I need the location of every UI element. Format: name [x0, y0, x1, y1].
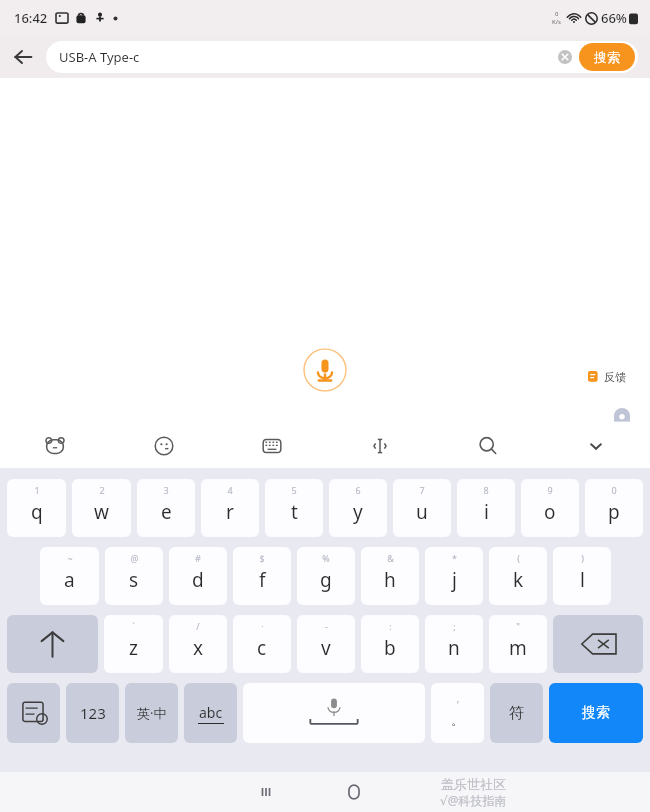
button[interactable]: 6 — [329, 479, 387, 537]
button[interactable]: 搜索 — [549, 683, 643, 743]
button[interactable]: # — [169, 547, 227, 605]
staticText: y — [353, 499, 363, 525]
button[interactable]: Recents — [242, 772, 290, 812]
button[interactable]: ’ — [431, 683, 484, 743]
button[interactable]: Home — [330, 772, 378, 812]
staticText: & — [387, 552, 394, 564]
button[interactable]: abc — [184, 683, 237, 743]
staticText: 1 — [34, 484, 40, 496]
button[interactable]: ( — [489, 547, 547, 605]
staticText: ( — [517, 552, 520, 564]
staticText: f — [259, 567, 266, 593]
button[interactable]: USB-A Type-c — [46, 41, 638, 73]
staticText: s — [129, 567, 139, 593]
staticText: ; — [453, 620, 456, 632]
button[interactable]: * — [425, 547, 483, 605]
staticText: e — [161, 499, 172, 525]
staticText: * — [452, 552, 457, 564]
staticText: ` — [132, 620, 135, 632]
button[interactable]: Voice input — [303, 348, 347, 392]
staticText: n — [448, 635, 460, 661]
button[interactable]: 9 — [521, 479, 579, 537]
button[interactable]: ~ — [40, 547, 99, 605]
button[interactable]: Space — [243, 683, 425, 743]
staticText: 搜索 — [582, 704, 610, 722]
button[interactable]: 英·中 — [125, 683, 178, 743]
staticText: t — [291, 499, 298, 525]
staticText: p — [608, 499, 620, 525]
button[interactable]: Back — [0, 36, 46, 78]
staticText: m — [509, 635, 527, 661]
staticText: 搜索 — [594, 49, 620, 65]
staticText: 7 — [419, 484, 425, 496]
button[interactable]: 4 — [201, 479, 259, 537]
button[interactable]: 搜索 — [579, 43, 635, 71]
staticText: w — [94, 499, 109, 525]
staticText: 0 — [555, 10, 559, 18]
staticText: 6 — [355, 484, 361, 496]
button[interactable]: Baidu input — [0, 424, 109, 468]
button[interactable]: Clear — [553, 45, 577, 69]
staticText: 符 — [509, 704, 524, 723]
staticText: 123 — [80, 703, 106, 723]
button[interactable]: ` — [104, 615, 163, 673]
button[interactable]: 8 — [457, 479, 515, 537]
staticText: z — [129, 635, 138, 661]
button[interactable]: 5 — [265, 479, 323, 537]
staticText: k — [513, 567, 524, 593]
staticText: 5 — [291, 484, 297, 496]
button[interactable]: : — [361, 615, 419, 673]
button[interactable]: - — [297, 615, 355, 673]
button[interactable]: 0 — [585, 479, 643, 537]
staticText: / — [196, 620, 200, 632]
staticText: g — [320, 567, 332, 593]
staticText: 。 — [451, 712, 464, 728]
staticText: b — [384, 635, 396, 661]
button[interactable]: ; — [425, 615, 483, 673]
button[interactable]: 7 — [393, 479, 451, 537]
button[interactable]: / — [169, 615, 227, 673]
staticText: o — [544, 499, 556, 525]
staticText: l — [580, 567, 585, 593]
staticText: v — [321, 635, 331, 661]
button[interactable]: % — [297, 547, 355, 605]
staticText: c — [257, 635, 267, 661]
button[interactable]: 3 — [137, 479, 195, 537]
staticText: @ — [130, 552, 139, 564]
staticText: 英·中 — [137, 704, 167, 722]
button[interactable]: Emoji — [109, 424, 218, 468]
staticText: r — [226, 499, 234, 525]
button[interactable]: " — [489, 615, 547, 673]
staticText: - — [325, 620, 328, 632]
staticText: 9 — [547, 484, 553, 496]
button[interactable]: Search — [434, 424, 542, 468]
button[interactable]: @ — [105, 547, 163, 605]
button[interactable]: 123 — [66, 683, 119, 743]
staticText: 16:42 — [14, 9, 48, 27]
button[interactable]: Cursor control — [326, 424, 434, 468]
staticText: j — [452, 567, 457, 593]
staticText: # — [195, 552, 201, 564]
button[interactable]: Hide keyboard — [542, 424, 650, 468]
button[interactable]: Input settings — [7, 683, 60, 743]
staticText: h — [384, 567, 396, 593]
staticText: " — [516, 620, 520, 632]
button[interactable]: · — [233, 615, 291, 673]
button[interactable]: 2 — [72, 479, 131, 537]
button[interactable]: Keyboard layout — [218, 424, 326, 468]
staticText: q — [31, 499, 43, 525]
button[interactable]: & — [361, 547, 419, 605]
staticText: i — [484, 499, 489, 525]
staticText: 0 — [611, 484, 617, 496]
button[interactable]: Backspace — [553, 615, 643, 673]
button[interactable]: ) — [553, 547, 611, 605]
button[interactable]: 1 — [7, 479, 66, 537]
button[interactable]: Shift — [7, 615, 98, 673]
button[interactable]: $ — [233, 547, 291, 605]
staticText: % — [322, 552, 330, 564]
staticText: d — [192, 567, 204, 593]
button[interactable]: 符 — [490, 683, 543, 743]
staticText: ’ — [457, 698, 459, 712]
staticText: 66% — [601, 9, 627, 27]
button[interactable]: 反馈 — [578, 366, 636, 388]
